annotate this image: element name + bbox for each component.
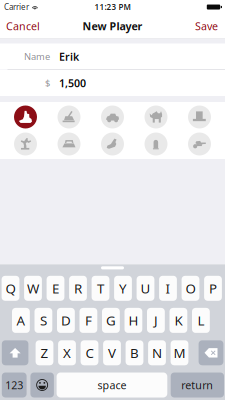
button[interactable]: P: [204, 276, 222, 301]
button[interactable]: M: [171, 340, 188, 365]
button[interactable]: Cancel: [0, 14, 46, 38]
staticText: S: [40, 311, 47, 329]
staticText: A: [16, 311, 25, 329]
staticText: P: [209, 279, 217, 297]
button[interactable]: Cannon token: [188, 132, 211, 155]
staticText: J: [154, 311, 158, 329]
button[interactable]: space: [57, 372, 167, 397]
button[interactable]: A: [12, 308, 30, 333]
button[interactable]: Shoe token: [101, 132, 124, 155]
button[interactable]: Horse and rider token: [14, 132, 37, 155]
staticText: M: [173, 344, 185, 362]
button[interactable]: V: [103, 340, 121, 365]
button[interactable]: Save: [188, 14, 225, 38]
staticText: I: [165, 279, 170, 297]
staticText: W: [27, 279, 39, 297]
button[interactable]: Delete: [199, 340, 223, 365]
staticText: L: [197, 311, 204, 329]
button[interactable]: $: [0, 70, 225, 96]
staticText: Cancel: [6, 19, 40, 33]
button[interactable]: Z: [36, 340, 53, 365]
button[interactable]: B: [126, 340, 143, 365]
staticText: Y: [119, 279, 127, 297]
button[interactable]: F: [79, 308, 97, 333]
staticText: C: [85, 344, 93, 362]
staticText: F: [85, 311, 92, 329]
staticText: Save: [195, 19, 218, 33]
staticText: V: [108, 344, 116, 362]
button[interactable]: Shift: [2, 340, 28, 365]
button[interactable]: Top hat token: [188, 105, 211, 128]
staticText: Carrier: [4, 2, 29, 12]
staticText: Erik: [59, 49, 79, 64]
staticText: D: [61, 311, 71, 329]
button[interactable]: Thimble token: [144, 132, 167, 155]
staticText: N: [152, 344, 162, 362]
button[interactable]: R: [69, 276, 87, 301]
button[interactable]: L: [192, 308, 210, 333]
button[interactable]: 123: [2, 372, 27, 397]
button[interactable]: O: [182, 276, 199, 301]
staticText: 123: [5, 378, 23, 392]
staticText: U: [140, 279, 150, 297]
button[interactable]: Car token: [101, 105, 124, 128]
staticText: Q: [5, 279, 15, 297]
button[interactable]: Name: [0, 43, 225, 69]
staticText: space: [97, 378, 126, 392]
staticText: G: [106, 311, 116, 329]
button[interactable]: G: [102, 308, 120, 333]
button[interactable]: Q: [2, 276, 19, 301]
staticText: E: [52, 279, 59, 297]
staticText: R: [74, 279, 82, 297]
staticText: 11:23 PM: [94, 2, 130, 12]
button[interactable]: N: [148, 340, 166, 365]
button[interactable]: E: [47, 276, 64, 301]
staticText: X: [63, 344, 71, 362]
button[interactable]: S: [34, 308, 52, 333]
button[interactable]: T: [92, 276, 109, 301]
staticText: $: [45, 77, 50, 89]
staticText: New Player: [82, 19, 142, 33]
button[interactable]: K: [169, 308, 187, 333]
staticText: Name: [24, 50, 50, 63]
button[interactable]: Emoji keyboard: [30, 372, 54, 397]
button[interactable]: Iron token: [57, 132, 80, 155]
staticText: 1,500: [59, 76, 86, 90]
button[interactable]: W: [24, 276, 42, 301]
staticText: O: [185, 279, 195, 297]
button[interactable]: U: [137, 276, 154, 301]
staticText: B: [130, 344, 139, 362]
button[interactable]: I: [159, 276, 177, 301]
staticText: H: [128, 311, 138, 329]
button[interactable]: H: [124, 308, 142, 333]
button[interactable]: Y: [114, 276, 132, 301]
button[interactable]: J: [147, 308, 165, 333]
button[interactable]: Wheelbarrow token: [57, 105, 80, 128]
staticText: return: [181, 378, 213, 392]
button[interactable]: D: [57, 308, 75, 333]
button[interactable]: Boot token: [14, 105, 37, 128]
staticText: Z: [40, 344, 48, 362]
button[interactable]: C: [81, 340, 98, 365]
button[interactable]: Dog token: [144, 105, 167, 128]
staticText: K: [174, 311, 182, 329]
button[interactable]: X: [58, 340, 76, 365]
staticText: T: [97, 279, 104, 297]
button[interactable]: return: [171, 372, 224, 397]
